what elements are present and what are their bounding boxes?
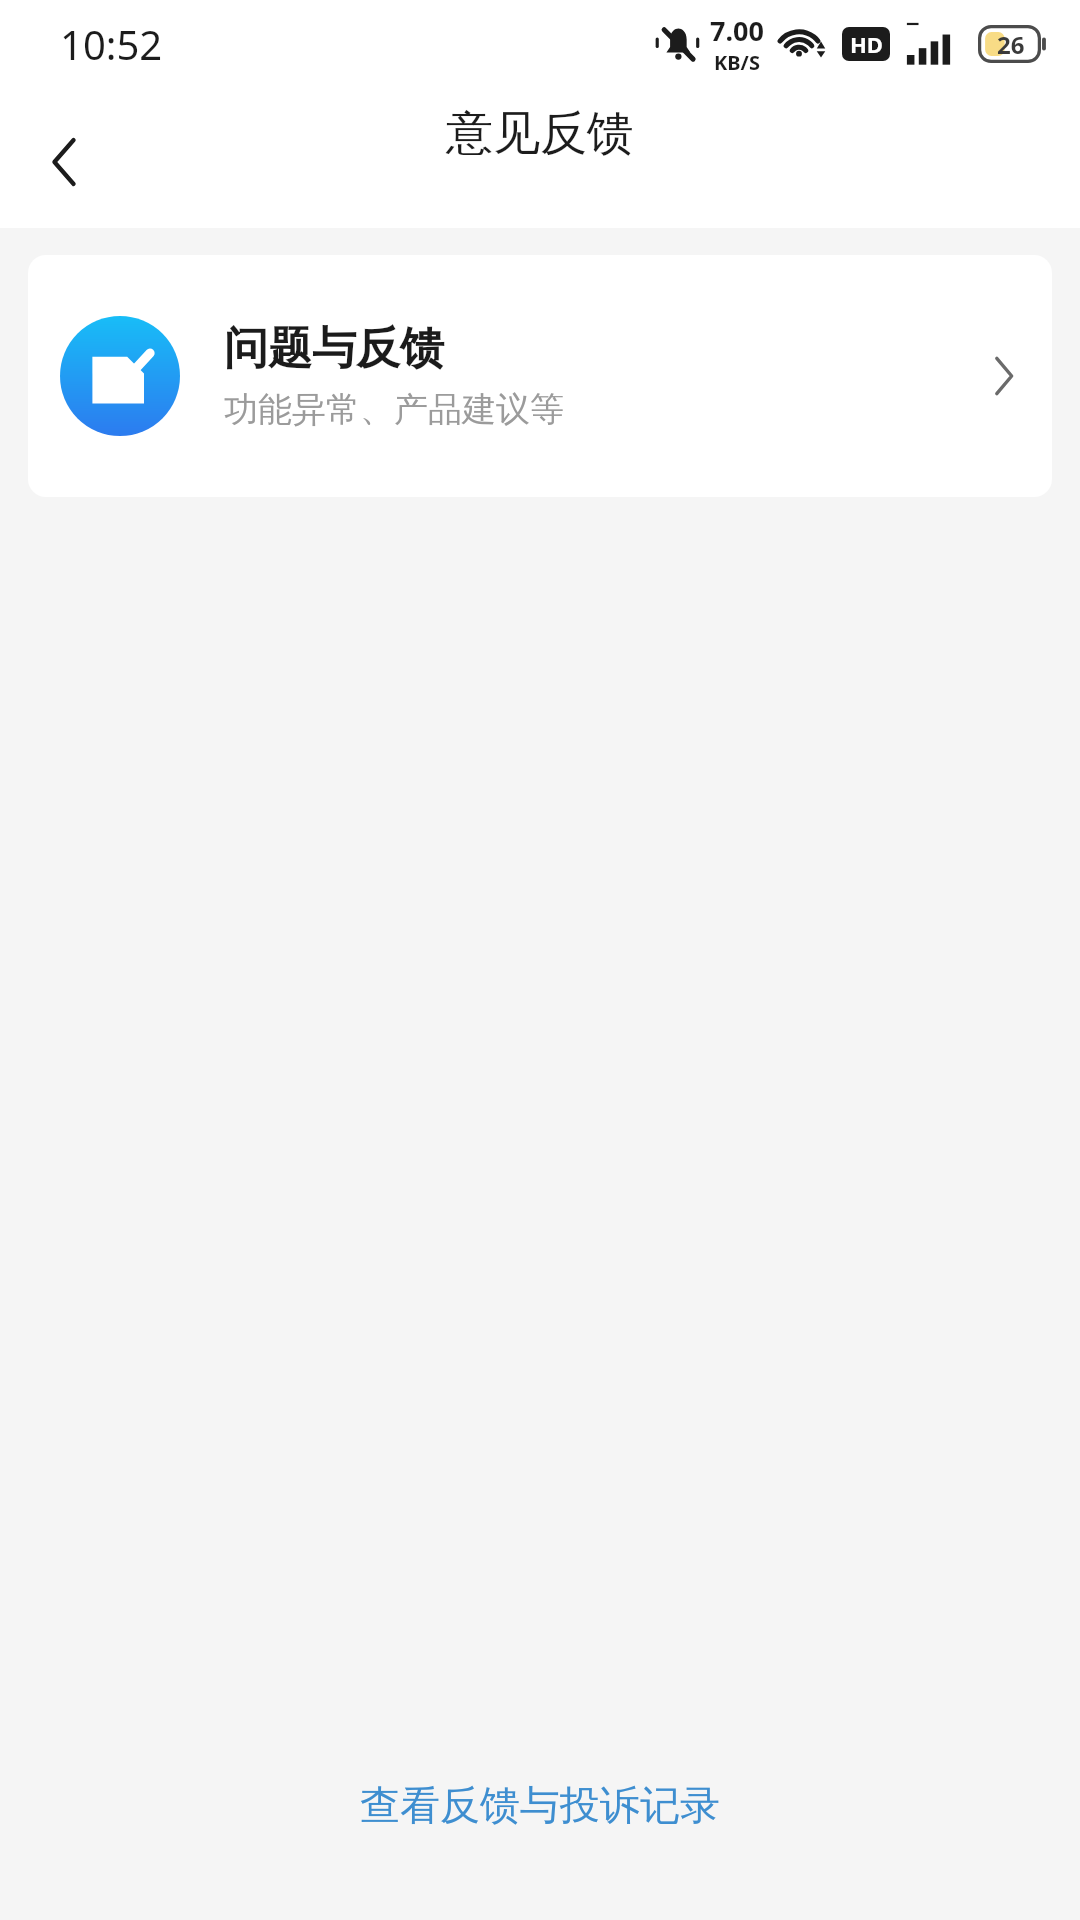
staticText: 意见反馈 [446, 104, 634, 163]
staticText: 功能异常、产品建议等 [224, 388, 564, 431]
staticText: 26 [997, 28, 1025, 61]
staticText: 问题与反馈 [224, 321, 444, 376]
button[interactable]: Back [8, 106, 120, 218]
staticText: KB/S [714, 49, 760, 76]
button[interactable]: 查看反馈与投诉记录 [334, 1768, 746, 1842]
button[interactable]: 问题与反馈 [28, 255, 1052, 497]
staticText: 10:52 [60, 17, 163, 71]
staticText: HD [850, 29, 883, 59]
staticText: 查看反馈与投诉记录 [360, 1780, 720, 1830]
staticText: 7.00 [710, 12, 764, 49]
